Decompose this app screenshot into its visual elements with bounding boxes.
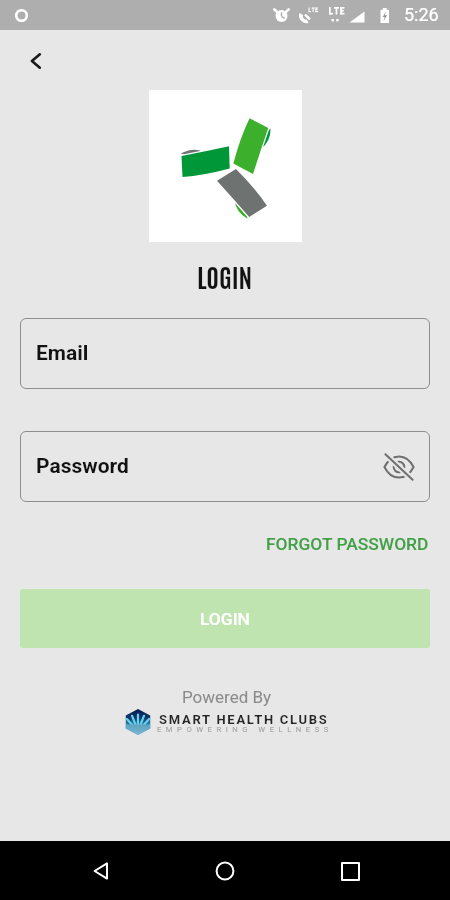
staticText: Email [36,341,89,366]
staticText: 5:26 [404,4,439,25]
button[interactable]: Home [201,847,249,895]
button[interactable]: Email [20,318,430,389]
staticText: LOGIN [200,609,250,629]
button[interactable]: Show password [380,448,418,486]
staticText: LOGIN [197,259,253,293]
staticText: Password [36,454,129,479]
staticText: EMPOWERING WELLNESS [157,725,333,734]
button[interactable]: FORGOT PASSWORD [266,534,429,554]
staticText: SMART HEALTH CLUBS [159,712,329,727]
button[interactable]: Recent apps [326,847,374,895]
button[interactable]: Back [77,847,125,895]
button[interactable]: Back [18,43,54,79]
staticText: Powered By [182,687,272,707]
button[interactable]: Password [20,431,430,502]
staticText: FORGOT PASSWORD [266,534,429,554]
button[interactable]: LOGIN [20,589,430,648]
